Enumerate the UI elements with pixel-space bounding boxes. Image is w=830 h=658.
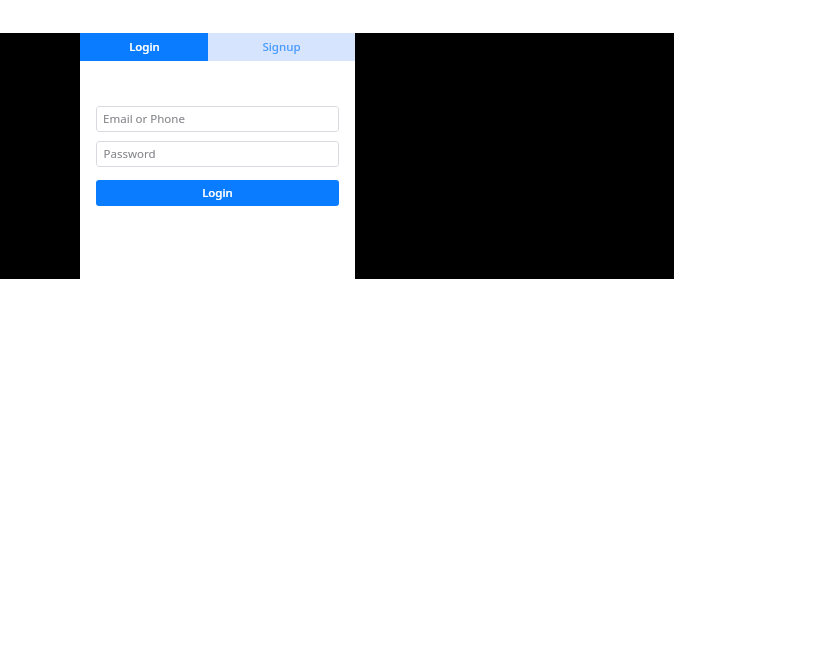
button[interactable]: Signup bbox=[208, 33, 355, 61]
staticText: Login bbox=[202, 185, 233, 201]
staticText: Email or Phone bbox=[103, 111, 185, 127]
button[interactable]: Password bbox=[96, 141, 339, 167]
staticText: Signup bbox=[262, 39, 301, 55]
staticText: Login bbox=[129, 39, 160, 55]
button[interactable]: Login bbox=[80, 33, 208, 61]
button[interactable]: Email or Phone bbox=[96, 106, 339, 132]
button[interactable]: Login bbox=[96, 180, 339, 206]
staticText: Password bbox=[103, 146, 156, 162]
